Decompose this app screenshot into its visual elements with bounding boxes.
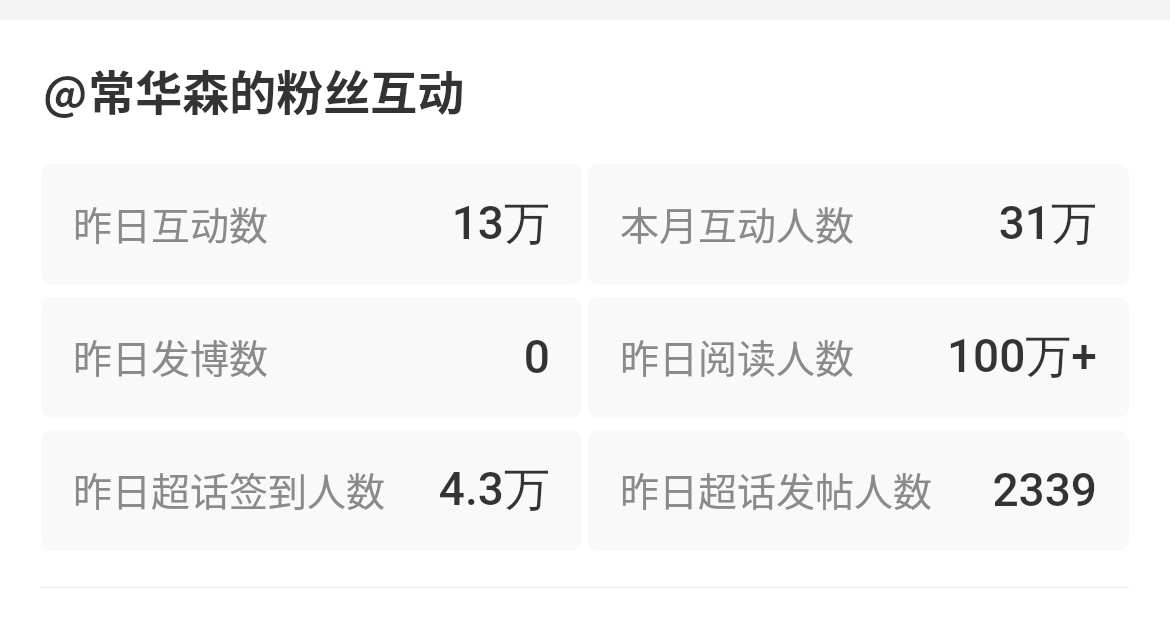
button[interactable]: 昨日发博数 [41,297,582,418]
staticText: 本月互动人数 [620,195,855,251]
staticText: 4.3万 [438,461,550,519]
staticText: @常华森的粉丝互动 [43,55,465,119]
staticText: 31万 [998,195,1097,253]
staticText: 昨日阅读人数 [620,328,855,384]
staticText: 100万+ [946,328,1097,386]
staticText: 昨日发博数 [73,328,269,384]
staticText: 2339 [992,463,1097,517]
staticText: 昨日超话签到人数 [73,461,386,517]
staticText: 昨日超话发帖人数 [620,461,933,517]
button[interactable]: 昨日互动数 [41,164,582,285]
button[interactable]: 昨日超话签到人数 [41,430,582,551]
staticText: 昨日互动数 [73,195,269,251]
button[interactable]: 昨日超话发帖人数 [588,430,1129,551]
button[interactable]: 本月互动人数 [588,164,1129,285]
staticText: 0 [523,330,550,384]
button[interactable]: 昨日阅读人数 [588,297,1129,418]
staticText: 13万 [451,195,550,253]
